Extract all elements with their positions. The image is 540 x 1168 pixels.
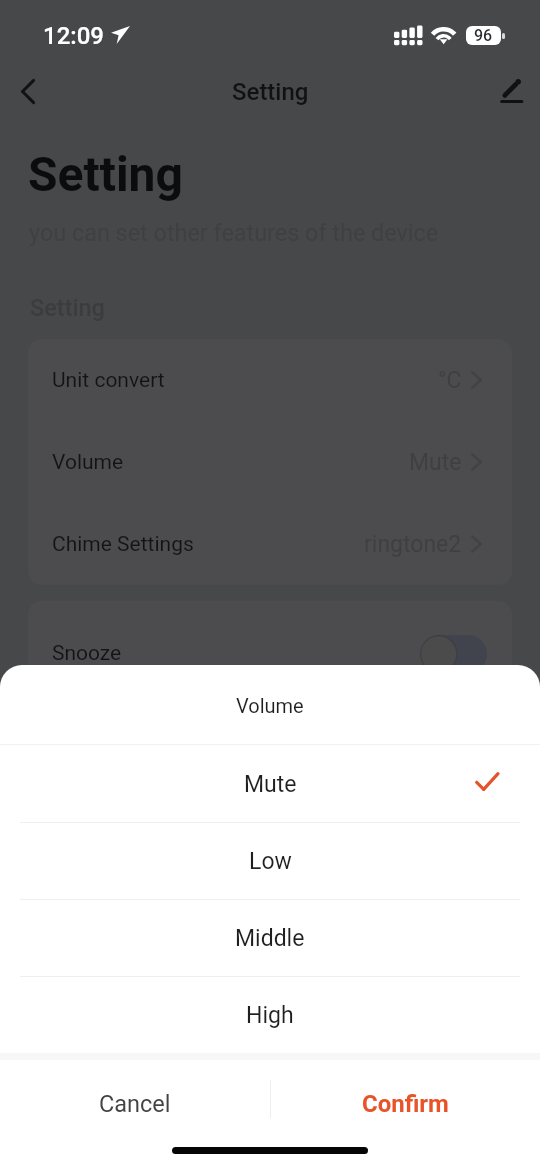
staticText: Cancel — [99, 1090, 171, 1118]
button[interactable]: High — [0, 976, 540, 1053]
staticText: ringtone2 — [364, 531, 462, 558]
button[interactable]: Chime Settings — [28, 503, 512, 585]
staticText: Middle — [235, 925, 305, 952]
staticText: Mute — [244, 771, 297, 798]
staticText: Setting — [30, 294, 105, 322]
button[interactable]: Confirm — [270, 1060, 540, 1147]
staticText: Unit convert — [52, 368, 165, 393]
button[interactable]: Edit — [483, 67, 533, 117]
staticText: Setting — [28, 146, 183, 202]
staticText: Setting — [232, 78, 309, 106]
button[interactable]: Volume — [28, 421, 512, 503]
staticText: °C — [438, 367, 462, 394]
button[interactable]: Cancel — [0, 1060, 270, 1147]
button[interactable]: Mute — [0, 745, 540, 822]
button[interactable]: Low — [0, 822, 540, 899]
button[interactable]: Middle — [0, 899, 540, 976]
staticText: Mute — [409, 449, 462, 476]
button[interactable]: Unit convert — [28, 339, 512, 421]
staticText: Confirm — [362, 1090, 449, 1118]
staticText: Volume — [236, 694, 304, 717]
staticText: 96 — [474, 26, 493, 45]
staticText: Chime Settings — [52, 532, 194, 557]
button[interactable]: Snooze — [28, 601, 512, 706]
staticText: 12:09 — [43, 22, 104, 50]
staticText: Volume — [52, 450, 124, 475]
button[interactable]: Back — [0, 64, 52, 116]
staticText: Snooze — [52, 641, 122, 666]
staticText: Low — [249, 848, 292, 875]
staticText: High — [246, 1002, 294, 1029]
